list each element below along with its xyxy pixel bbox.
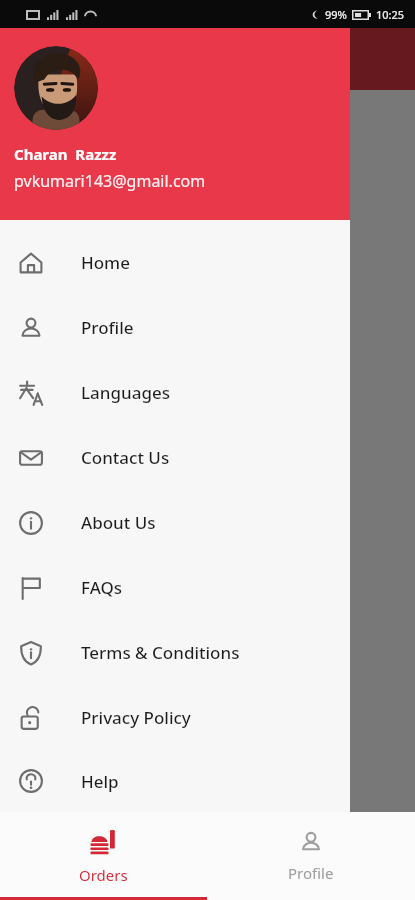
button[interactable]: Orders [0,812,207,900]
staticText: Languages [81,381,170,404]
button[interactable]: Home [0,230,350,295]
staticText: Privacy Policy [81,706,191,729]
button[interactable]: FAQs [0,555,350,620]
staticText: Home [81,251,130,274]
button[interactable]: Contact Us [0,425,350,490]
button[interactable]: Privacy Policy [0,685,350,750]
button[interactable]: Help [0,750,350,812]
button[interactable]: Terms & Conditions [0,620,350,685]
staticText: Contact Us [81,446,170,469]
staticText: Charan Razzz [14,144,117,164]
staticText: Orders [79,865,128,885]
staticText: 10:25 [376,7,405,22]
staticText: 99% [325,7,347,22]
staticText: FAQs [81,576,123,599]
staticText: Terms & Conditions [81,641,240,664]
button[interactable]: Languages [0,360,350,425]
staticText: Profile [81,316,134,339]
button[interactable]: About Us [0,490,350,555]
staticText: pvkumari143@gmail.com [14,170,206,192]
staticText: Help [81,770,119,793]
staticText: About Us [81,511,156,534]
button[interactable]: Profile [207,812,415,900]
staticText: Profile [288,863,334,883]
button[interactable]: Profile [0,295,350,360]
